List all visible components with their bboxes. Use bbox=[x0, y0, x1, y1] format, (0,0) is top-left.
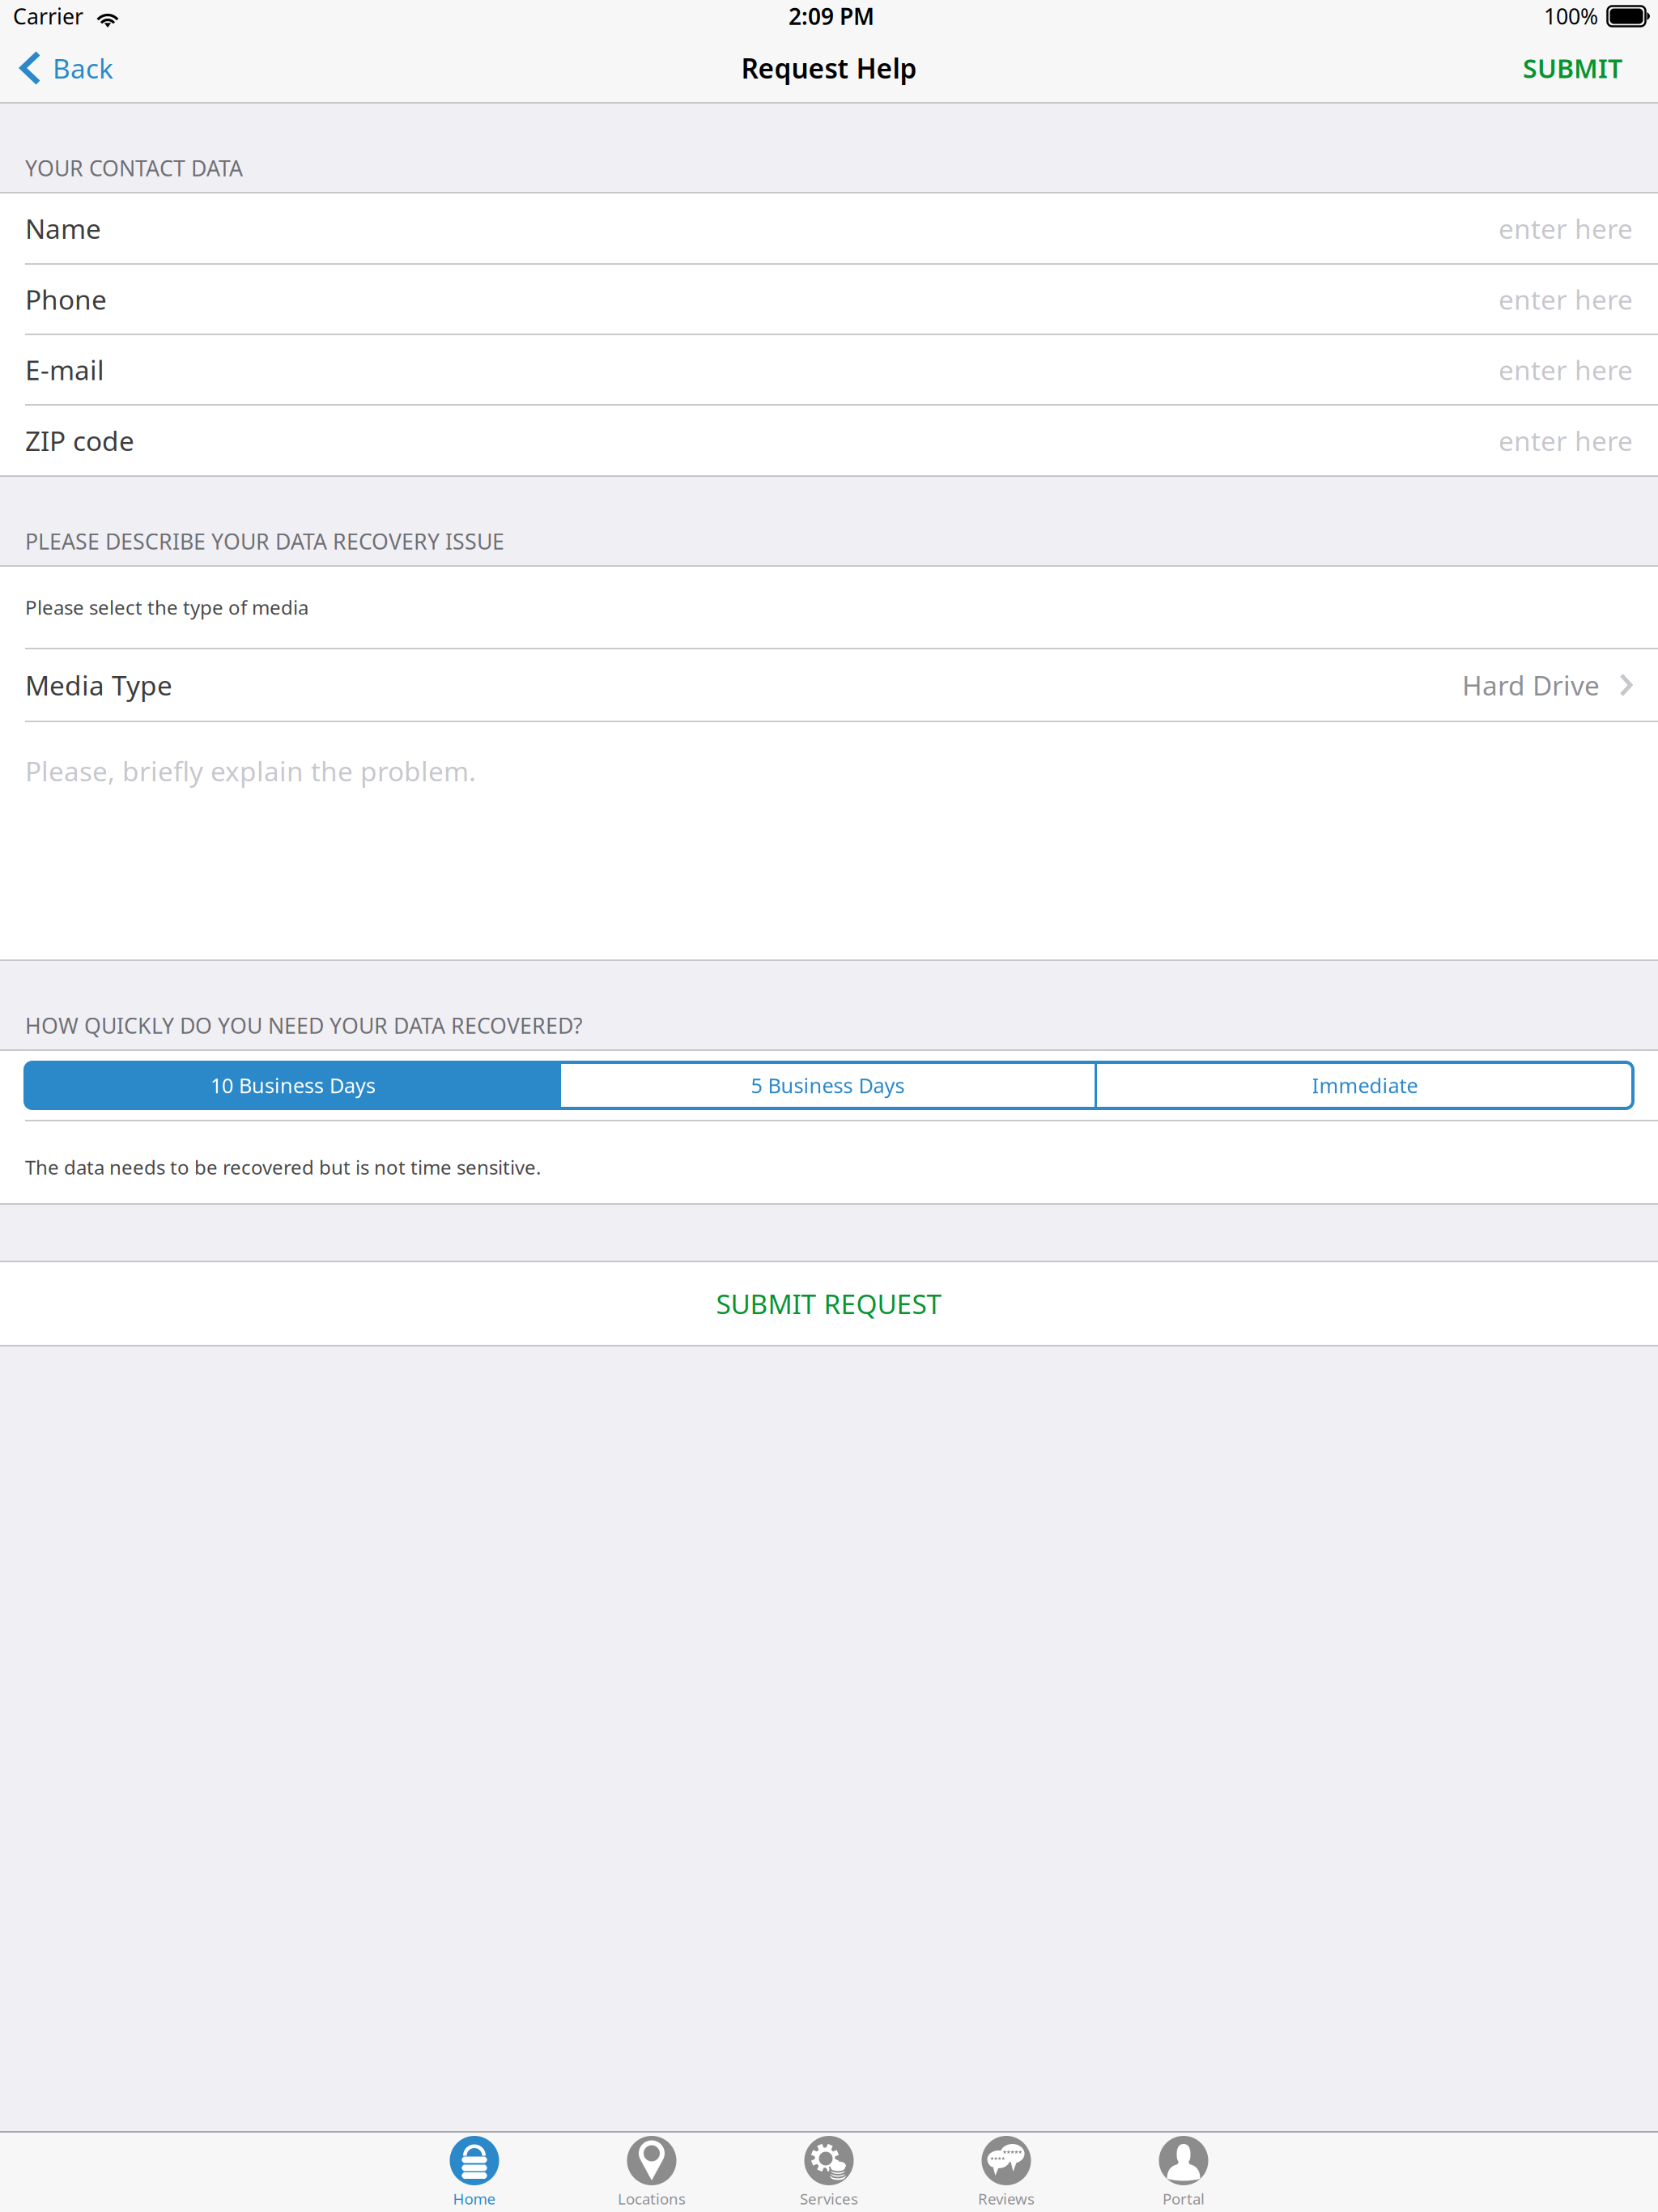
button[interactable]: Back bbox=[0, 32, 132, 104]
staticText: SUBMIT bbox=[1523, 51, 1622, 85]
staticText: HOW QUICKLY DO YOU NEED YOUR DATA RECOVE… bbox=[25, 1011, 583, 1040]
button[interactable]: Reviews bbox=[918, 2131, 1095, 2212]
button[interactable]: Name bbox=[0, 194, 1658, 263]
staticText: Immediate bbox=[1312, 1072, 1418, 1099]
staticText: ZIP code bbox=[25, 423, 134, 458]
button[interactable]: SUBMIT REQUEST bbox=[0, 1262, 1658, 1345]
staticText: The data needs to be recovered but is no… bbox=[25, 1154, 541, 1180]
staticText: Carrier bbox=[13, 2, 83, 31]
staticText: Phone bbox=[25, 281, 107, 317]
staticText: Services bbox=[800, 2189, 858, 2209]
staticText: 5 Business Days bbox=[751, 1072, 905, 1099]
button[interactable]: Home bbox=[386, 2131, 563, 2212]
button[interactable]: Portal bbox=[1095, 2131, 1272, 2212]
button[interactable]: Locations bbox=[563, 2131, 740, 2212]
staticText: Media Type bbox=[25, 667, 172, 703]
staticText: enter here bbox=[1499, 352, 1633, 388]
staticText: YOUR CONTACT DATA bbox=[25, 154, 243, 182]
staticText: 10 Business Days bbox=[210, 1072, 376, 1099]
button[interactable]: Immediate bbox=[1097, 1062, 1633, 1108]
staticText: Please select the type of media bbox=[25, 594, 308, 620]
button[interactable]: 10 Business Days bbox=[25, 1062, 561, 1108]
staticText: Back bbox=[53, 50, 113, 86]
staticText: SUBMIT REQUEST bbox=[716, 1286, 942, 1322]
staticText: Name bbox=[25, 210, 101, 246]
staticText: Reviews bbox=[978, 2189, 1035, 2209]
button[interactable]: Phone bbox=[0, 265, 1658, 334]
staticText: Locations bbox=[618, 2189, 686, 2209]
staticText: Home bbox=[453, 2189, 496, 2209]
button[interactable]: Media Type bbox=[0, 649, 1658, 721]
staticText: Request Help bbox=[741, 50, 917, 86]
staticText: Please, briefly explain the problem. bbox=[25, 753, 476, 789]
staticText: enter here bbox=[1499, 423, 1633, 458]
staticText: Hard Drive bbox=[1462, 667, 1600, 703]
staticText: 2:09 PM bbox=[789, 1, 874, 31]
button[interactable]: SUBMIT bbox=[1498, 32, 1658, 104]
staticText: PLEASE DESCRIBE YOUR DATA RECOVERY ISSUE bbox=[25, 527, 504, 555]
staticText: enter here bbox=[1499, 210, 1633, 246]
button[interactable]: ZIP code bbox=[0, 406, 1658, 475]
staticText: E-mail bbox=[25, 352, 104, 388]
staticText: Portal bbox=[1163, 2189, 1205, 2209]
button[interactable]: 5 Business Days bbox=[561, 1062, 1095, 1108]
staticText: enter here bbox=[1499, 281, 1633, 317]
button[interactable]: Please, briefly explain the problem. bbox=[0, 722, 1658, 959]
staticText: 100% bbox=[1544, 2, 1598, 31]
button[interactable]: Services bbox=[740, 2131, 918, 2212]
button[interactable]: E-mail bbox=[0, 335, 1658, 404]
